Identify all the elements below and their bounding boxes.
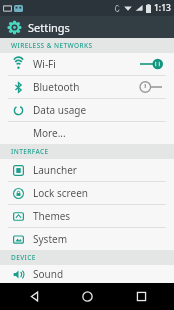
staticText: Bluetooth xyxy=(33,80,138,94)
staticText: Wi-Fi xyxy=(33,57,138,71)
staticText: Settings xyxy=(28,20,70,35)
button[interactable]: Back xyxy=(14,283,54,310)
staticText: WIRELESS & NETWORKS xyxy=(11,41,93,50)
button[interactable]: Sound xyxy=(0,265,174,283)
button[interactable]: Recent apps xyxy=(121,283,161,310)
staticText: Lock screen xyxy=(33,186,164,200)
staticText: DEVICE xyxy=(11,253,36,262)
staticText: Sound xyxy=(33,267,164,281)
staticText: Themes xyxy=(33,209,164,223)
button[interactable]: Settings xyxy=(0,16,174,38)
button[interactable]: Bluetooth off xyxy=(138,79,164,95)
staticText: 1:13 xyxy=(154,2,171,14)
button[interactable]: Home xyxy=(67,283,107,310)
staticText: INTERFACE xyxy=(11,147,49,156)
staticText: System xyxy=(33,232,164,246)
staticText: More... xyxy=(33,126,164,140)
button[interactable]: Launcher xyxy=(0,159,174,181)
button[interactable]: Data usage xyxy=(0,99,174,121)
button[interactable]: Wi-Fi on xyxy=(138,56,164,72)
button[interactable]: Bluetooth xyxy=(0,76,174,98)
staticText: Data usage xyxy=(33,103,164,117)
staticText: Launcher xyxy=(33,163,164,177)
button[interactable]: Wi-Fi xyxy=(0,53,174,75)
button[interactable]: Themes xyxy=(0,205,174,227)
button[interactable]: System xyxy=(0,228,174,250)
button[interactable]: Lock screen xyxy=(0,182,174,204)
button[interactable]: More... xyxy=(0,122,174,144)
